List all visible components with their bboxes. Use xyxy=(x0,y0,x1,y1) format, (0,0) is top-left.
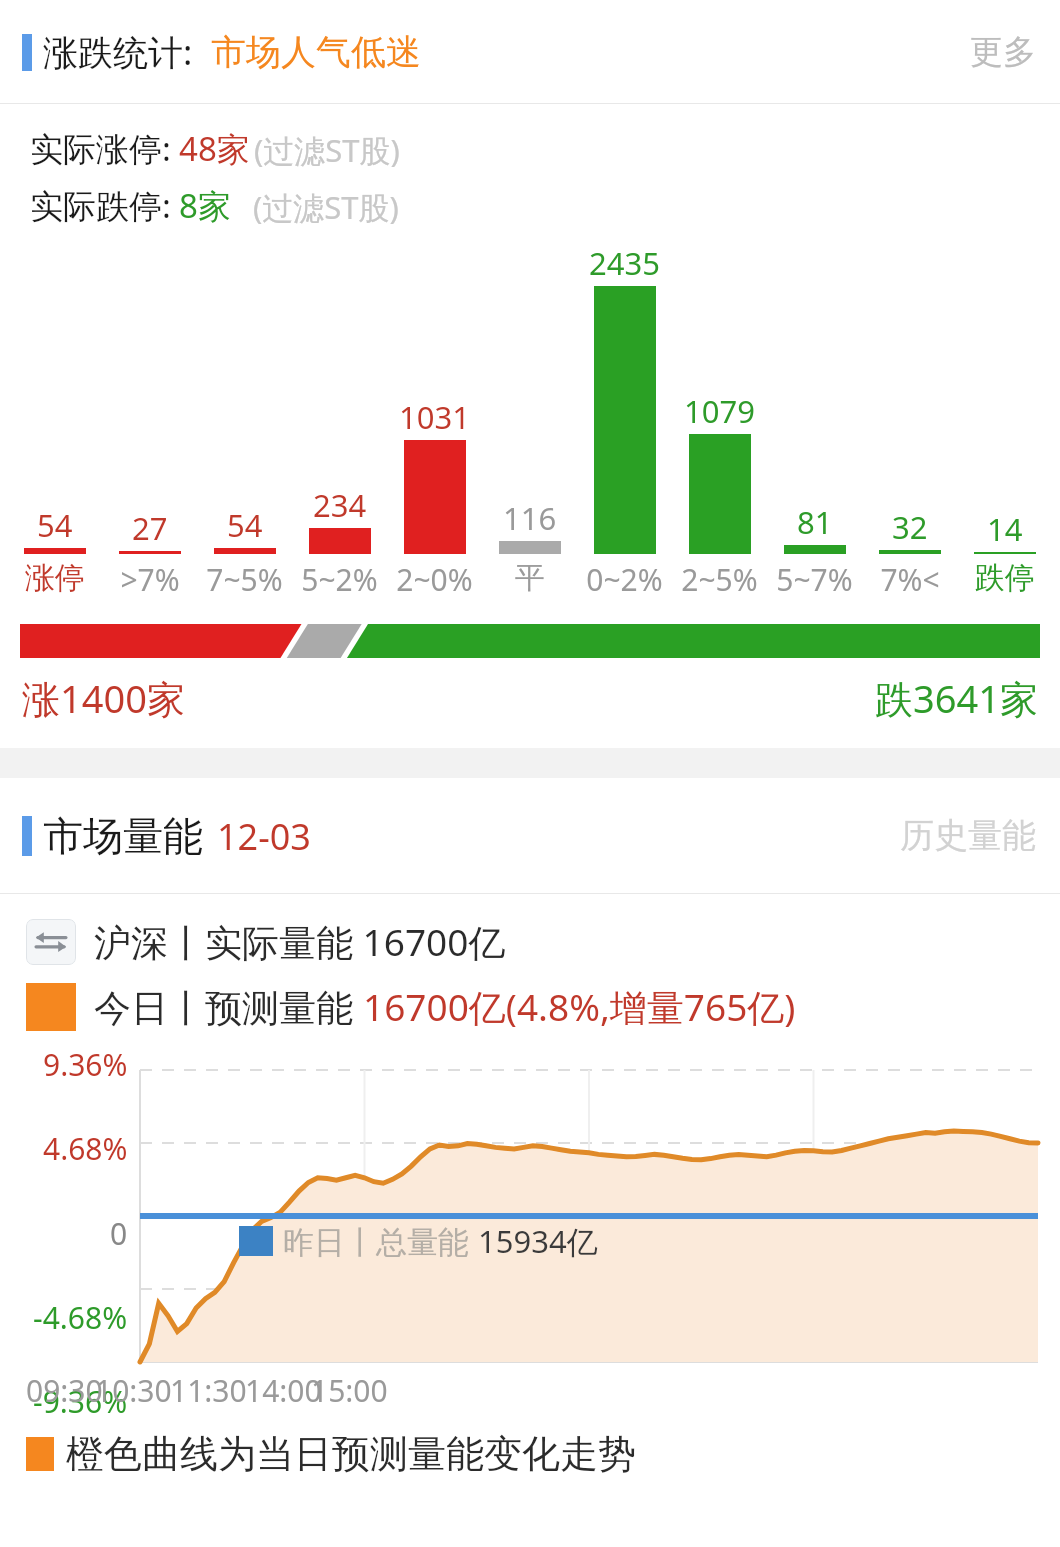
staticText: 跌3641家 xyxy=(875,672,1038,724)
staticText: 0 xyxy=(110,1213,128,1254)
button[interactable]: 涨跌统计: xyxy=(0,28,946,76)
staticText: 15934亿 xyxy=(478,1220,598,1262)
staticText: 5~2% xyxy=(301,559,378,600)
button[interactable]: 市场量能 xyxy=(0,811,876,861)
staticText: 5~7% xyxy=(776,559,853,600)
staticText: 14 xyxy=(987,508,1023,550)
staticText: 涨停 xyxy=(25,559,85,597)
staticText: 7%< xyxy=(880,559,940,600)
staticText: 81 xyxy=(797,501,833,543)
staticText: 涨跌统计: xyxy=(43,28,193,76)
staticText: 1031 xyxy=(399,396,470,438)
staticText: 沪深丨实际量能 16700亿 xyxy=(94,916,506,967)
staticText: 昨日丨总量能 xyxy=(283,1220,478,1262)
staticText: 4.68% xyxy=(43,1128,128,1169)
staticText: 历史量能 xyxy=(900,814,1036,857)
staticText: 橙色曲线为当日预测量能变化走势 xyxy=(66,1430,636,1478)
staticText: 跌停 xyxy=(975,559,1035,597)
staticText: >7% xyxy=(120,559,180,600)
staticText: 116 xyxy=(503,497,557,539)
staticText: 8家 xyxy=(179,183,231,228)
staticText: 2~0% xyxy=(396,559,473,600)
staticText: 涨1400家 xyxy=(22,672,185,724)
staticText: 32 xyxy=(892,506,928,548)
staticText: 2~5% xyxy=(681,559,758,600)
staticText: 09:30 xyxy=(26,1370,103,1411)
staticText: 市场人气低迷 xyxy=(211,30,421,74)
staticText: -4.68% xyxy=(33,1297,128,1338)
staticText: 实际涨停: xyxy=(30,126,171,171)
staticText: 54 xyxy=(227,504,263,546)
staticText: 市场量能 xyxy=(43,811,203,861)
button[interactable]: 历史量能 xyxy=(876,800,1060,871)
staticText: 平 xyxy=(515,559,545,597)
staticText: 14:00 xyxy=(245,1370,322,1411)
staticText: 27 xyxy=(132,507,168,549)
staticText: 更多 xyxy=(970,31,1036,73)
staticText: 11:30 xyxy=(170,1370,247,1411)
staticText: (过滤ST股) xyxy=(254,129,400,171)
staticText: -9.36% xyxy=(33,1381,128,1422)
staticText: 48家 xyxy=(179,126,250,171)
staticText: 15:00 xyxy=(311,1370,388,1411)
staticText: 实际跌停: xyxy=(30,183,171,228)
staticText: 54 xyxy=(37,504,73,546)
staticText: 0~2% xyxy=(586,559,663,600)
staticText: 12-03 xyxy=(217,812,311,861)
button[interactable]: 昨日丨总量能 xyxy=(239,1220,598,1262)
staticText: 9.36% xyxy=(43,1044,128,1085)
button[interactable]: 切换市场 xyxy=(26,919,76,965)
staticText: (过滤ST股) xyxy=(253,186,399,228)
button[interactable]: 更多 xyxy=(946,17,1060,87)
staticText: 今日丨预测量能 xyxy=(94,981,363,1032)
staticText: 16700亿(4.8%,增量765亿) xyxy=(363,981,796,1032)
staticText: 234 xyxy=(313,484,367,526)
staticText: 7~5% xyxy=(206,559,283,600)
staticText: 2435 xyxy=(589,242,660,284)
button[interactable] xyxy=(20,624,1040,658)
staticText: 1079 xyxy=(684,390,755,432)
staticText: 10:30 xyxy=(95,1370,172,1411)
